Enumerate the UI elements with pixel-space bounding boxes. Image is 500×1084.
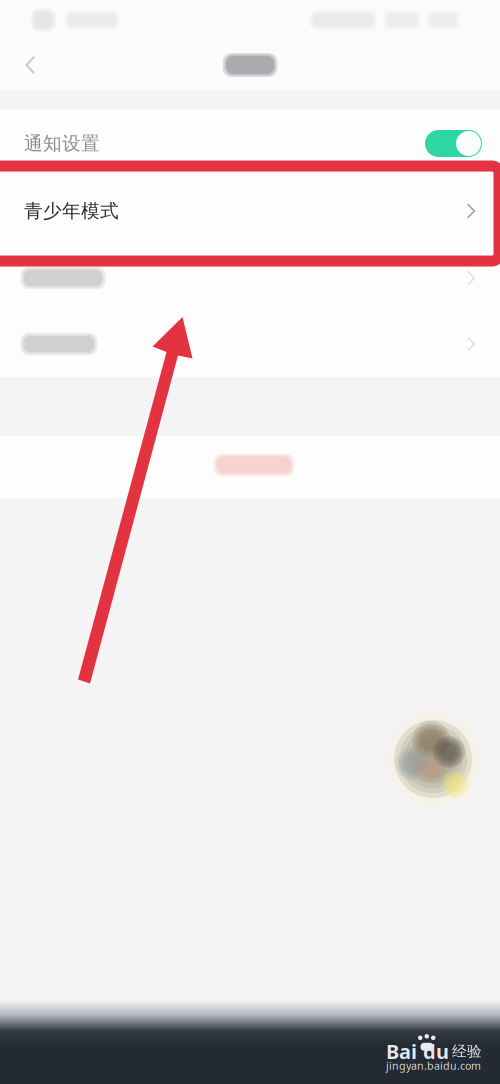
staticText: Bai [386,1038,417,1065]
button[interactable] [0,311,500,377]
staticText: 经验 [452,1042,482,1060]
staticText: 通知设置 [24,132,100,155]
button[interactable] [0,245,500,311]
button[interactable] [0,436,500,498]
button[interactable]: 通知设置 [0,110,500,177]
button[interactable]: 青少年模式 [0,177,500,245]
staticText: jingyan.baidu.com [386,1059,481,1073]
button[interactable]: Back [8,41,54,89]
staticText: 青少年模式 [24,199,119,222]
staticText: du [423,1038,449,1065]
